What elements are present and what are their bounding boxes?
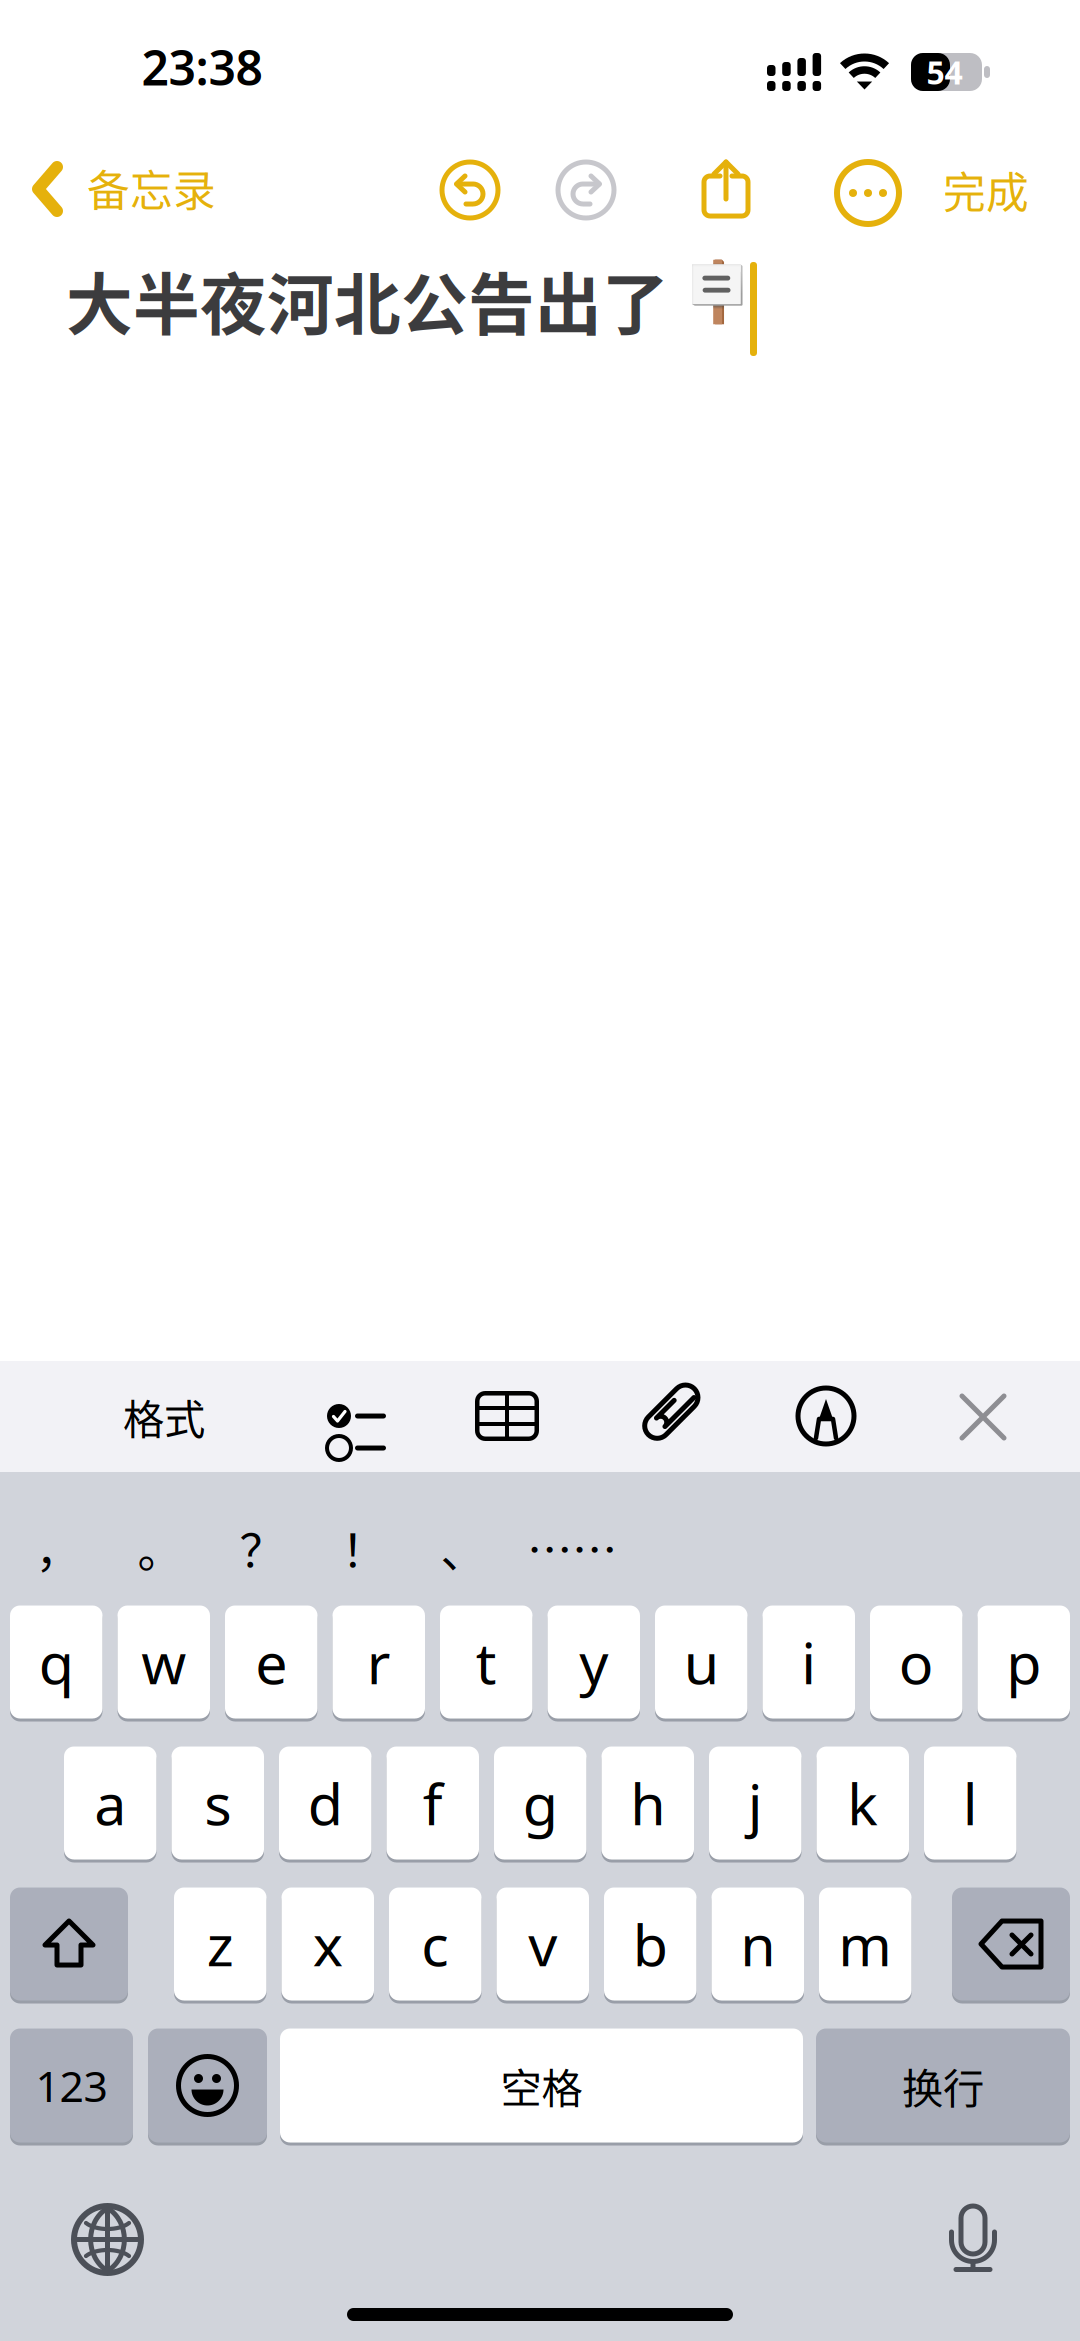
button[interactable]: More — [837, 162, 899, 224]
button[interactable]: q — [10, 1604, 102, 1720]
button[interactable]: Hide keyboard — [957, 1391, 1009, 1443]
button[interactable]: u — [655, 1604, 747, 1720]
staticText: 大半夜河北公告出了 — [66, 252, 669, 348]
staticText: …… — [527, 1515, 617, 1581]
button[interactable]: ？ — [212, 1503, 312, 1593]
staticText: r — [367, 1624, 391, 1700]
button[interactable]: ， — [8, 1503, 108, 1593]
staticText: 23:38 — [141, 35, 262, 99]
button[interactable]: Emoji — [148, 2027, 267, 2144]
button[interactable]: Shift — [10, 1886, 128, 2002]
staticText: n — [740, 1906, 775, 1982]
button[interactable]: ！ — [314, 1503, 414, 1593]
staticText: 、 — [440, 1515, 485, 1581]
staticText: 换行 — [902, 2056, 984, 2115]
staticText: k — [847, 1765, 878, 1841]
staticText: 空格 — [500, 2056, 582, 2115]
button[interactable]: n — [711, 1886, 804, 2002]
staticText: 。 — [137, 1515, 182, 1581]
button[interactable]: Undo — [442, 162, 498, 218]
button[interactable]: t — [440, 1604, 532, 1720]
button[interactable]: 备忘录 — [0, 130, 260, 248]
staticText: 123 — [35, 2057, 107, 2114]
staticText: l — [963, 1765, 978, 1841]
staticText: i — [801, 1624, 816, 1700]
button[interactable]: Redo — [558, 162, 614, 218]
staticText: c — [421, 1906, 449, 1982]
button[interactable]: Attach — [638, 1386, 696, 1452]
button[interactable]: p — [977, 1604, 1070, 1720]
staticText: 备忘录 — [87, 157, 216, 219]
button[interactable]: e — [225, 1604, 317, 1720]
staticText: y — [579, 1624, 608, 1700]
button[interactable]: Table — [475, 1391, 539, 1441]
button[interactable]: Next keyboard — [74, 2206, 141, 2273]
button[interactable]: x — [281, 1886, 374, 2002]
staticText: s — [204, 1765, 231, 1841]
button[interactable]: o — [870, 1604, 962, 1720]
button[interactable]: h — [601, 1745, 694, 1861]
staticText: j — [748, 1765, 763, 1841]
button[interactable]: Checklist — [313, 1388, 372, 1444]
button[interactable]: d — [279, 1745, 371, 1861]
button[interactable]: 完成 — [926, 150, 1046, 230]
button[interactable]: k — [816, 1745, 909, 1861]
button[interactable]: Dictate — [949, 2204, 997, 2272]
staticText: d — [308, 1765, 343, 1841]
staticText: ？ — [239, 1515, 284, 1581]
button[interactable]: i — [762, 1604, 855, 1720]
staticText: q — [39, 1624, 74, 1700]
button[interactable]: 、 — [413, 1503, 513, 1593]
staticText: v — [528, 1906, 557, 1982]
staticText: o — [899, 1624, 934, 1700]
staticText: 54 — [926, 51, 962, 93]
button[interactable]: y — [547, 1604, 640, 1720]
staticText: 🪧 — [681, 258, 754, 325]
button[interactable]: j — [709, 1745, 801, 1861]
staticText: w — [141, 1624, 186, 1700]
staticText: t — [476, 1624, 497, 1700]
staticText: b — [633, 1906, 668, 1982]
button[interactable]: Delete — [952, 1886, 1070, 2002]
button[interactable]: 空格 — [280, 2027, 803, 2144]
button[interactable]: Markup — [798, 1388, 854, 1444]
staticText: z — [207, 1906, 234, 1982]
staticText: u — [684, 1624, 719, 1700]
staticText: p — [1006, 1624, 1041, 1700]
staticText: h — [630, 1765, 665, 1841]
button[interactable]: 换行 — [816, 2027, 1070, 2144]
staticText: e — [255, 1624, 287, 1700]
staticText: 格式 — [123, 1387, 205, 1446]
button[interactable]: f — [386, 1745, 479, 1861]
staticText: f — [423, 1765, 443, 1841]
button[interactable]: v — [496, 1886, 589, 2002]
button[interactable]: s — [171, 1745, 264, 1861]
staticText: g — [523, 1765, 558, 1841]
button[interactable]: z — [174, 1886, 266, 2002]
staticText: x — [313, 1906, 343, 1982]
button[interactable]: 123 — [10, 2027, 133, 2144]
staticText: ， — [35, 1515, 80, 1581]
button[interactable]: Share — [702, 159, 750, 219]
button[interactable]: l — [924, 1745, 1016, 1861]
button[interactable]: r — [332, 1604, 425, 1720]
button[interactable]: g — [494, 1745, 586, 1861]
button[interactable]: 格式 — [99, 1361, 229, 1472]
button[interactable]: b — [604, 1886, 696, 2002]
staticText: m — [838, 1906, 892, 1982]
button[interactable]: c — [389, 1886, 481, 2002]
button[interactable]: a — [64, 1745, 156, 1861]
staticText: ！ — [341, 1515, 386, 1581]
button[interactable]: w — [117, 1604, 210, 1720]
staticText: 完成 — [943, 159, 1029, 221]
button[interactable]: m — [819, 1886, 911, 2002]
staticText: a — [94, 1765, 126, 1841]
button[interactable]: 。 — [110, 1503, 210, 1593]
button[interactable]: …… — [497, 1503, 647, 1593]
